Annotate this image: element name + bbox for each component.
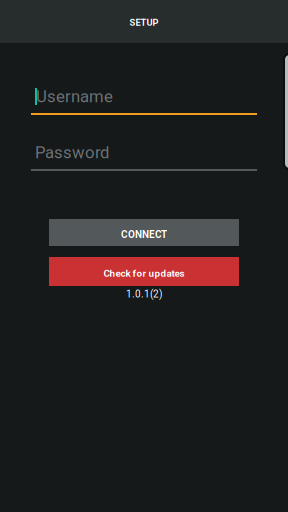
staticText: 1.0.1(2) (126, 288, 162, 300)
button[interactable]: Password (31, 144, 257, 171)
button[interactable]: Check for updates (49, 257, 239, 286)
staticText: Username (36, 87, 113, 106)
staticText: Password (35, 143, 109, 162)
staticText: SETUP (129, 17, 158, 28)
staticText: CONNECT (121, 229, 167, 240)
button[interactable]: Username (31, 88, 257, 115)
staticText: Check for updates (103, 268, 184, 279)
button[interactable]: CONNECT (49, 219, 239, 246)
